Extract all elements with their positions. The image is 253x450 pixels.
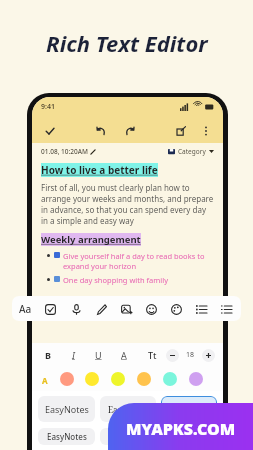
button[interactable]: Increase font size <box>202 349 215 362</box>
button[interactable]: Insert image <box>118 301 134 317</box>
button[interactable]: A <box>116 347 132 363</box>
staticText: I <box>72 349 75 361</box>
button[interactable]: Color swatch <box>60 372 74 386</box>
staticText: EasyNotes <box>108 431 148 442</box>
staticText: B <box>45 349 51 361</box>
button[interactable]: Tt <box>148 349 157 361</box>
staticText: EasyNotes <box>45 403 89 415</box>
button[interactable]: Checklist <box>42 301 58 317</box>
button[interactable]: EasyNotes <box>38 396 95 422</box>
staticText: U <box>95 349 102 361</box>
staticText: Give yourself half a day to read books t… <box>63 251 205 271</box>
button[interactable]: EasyNotes <box>38 428 95 445</box>
button[interactable]: Bullet list <box>193 301 209 317</box>
button[interactable]: Palette <box>168 301 184 317</box>
staticText: 01.08, 10:20AM <box>41 147 88 156</box>
button[interactable]: Undo <box>93 123 108 138</box>
staticText: Category <box>178 147 206 156</box>
staticText: How to live a better life <box>41 163 158 177</box>
staticText: First of all, you must clearly plan how … <box>41 182 214 226</box>
staticText: One day shopping with family <box>63 275 169 285</box>
staticText: Rich Text Editor <box>46 28 208 58</box>
button[interactable]: Color swatch <box>189 372 203 386</box>
button[interactable]: Share <box>173 123 188 138</box>
staticText: A <box>42 375 48 384</box>
staticText: Weekly arrangement <box>41 233 141 246</box>
button[interactable]: Color swatch <box>163 372 177 386</box>
staticText: EasyNotes <box>169 431 209 442</box>
staticText: MYAPKS.COM <box>126 418 236 440</box>
staticText: EasyNotes <box>167 403 211 415</box>
button[interactable]: Draw <box>93 301 109 317</box>
staticText: 18 <box>186 350 195 360</box>
button[interactable]: B <box>40 347 56 363</box>
staticText: EasyNotes <box>47 431 87 442</box>
staticText: EasyNotes <box>108 404 148 415</box>
button[interactable]: Done <box>42 123 57 138</box>
button[interactable]: EasyNotes <box>100 428 156 445</box>
button[interactable]: EasyNotes <box>161 396 217 422</box>
button[interactable]: Color swatch <box>137 372 151 386</box>
button[interactable]: Category <box>168 147 214 156</box>
button[interactable]: Voice note <box>68 301 84 317</box>
button[interactable]: More options <box>198 123 213 138</box>
button[interactable]: EasyNotes <box>161 428 217 445</box>
button[interactable]: Aa <box>19 302 32 316</box>
button[interactable]: Text color <box>40 375 49 384</box>
button[interactable]: Color swatch <box>85 372 99 386</box>
button[interactable]: Emoji <box>143 301 159 317</box>
button[interactable]: Numbered list <box>218 301 234 317</box>
staticText: 9:41 <box>41 102 55 112</box>
button[interactable]: Decrease font size <box>166 349 179 362</box>
button[interactable]: Redo <box>122 123 137 138</box>
button[interactable]: U <box>90 347 106 363</box>
button[interactable]: Color swatch <box>111 372 125 386</box>
staticText: A <box>121 349 127 361</box>
button[interactable]: I <box>65 347 81 363</box>
button[interactable]: EasyNotes <box>100 396 156 422</box>
